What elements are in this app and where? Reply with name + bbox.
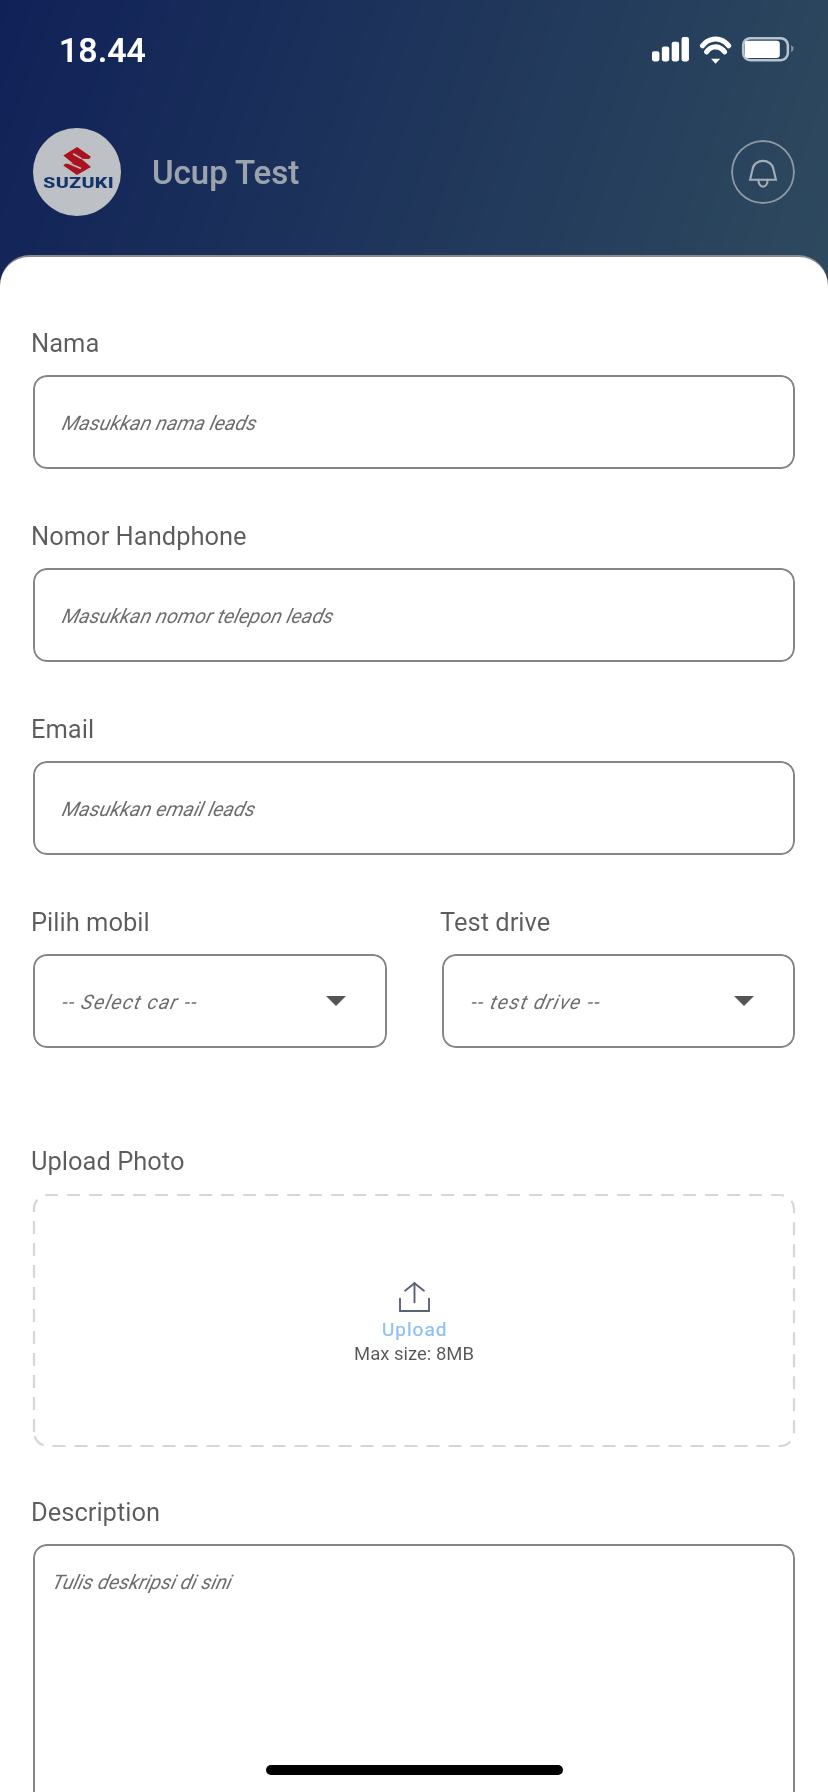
staticText: Upload bbox=[382, 1318, 448, 1340]
button[interactable]: Tulis deskripsi di sini bbox=[33, 1544, 795, 1792]
button[interactable]: Notifications bbox=[731, 140, 795, 204]
button[interactable]: Masukkan nomor telepon leads bbox=[33, 568, 795, 662]
button[interactable]: Masukkan nama leads bbox=[33, 375, 795, 469]
button[interactable]: Upload bbox=[33, 1194, 795, 1447]
staticText: Nama bbox=[31, 328, 100, 358]
button[interactable]: -- test drive -- bbox=[442, 954, 795, 1048]
staticText: Max size: 8MB bbox=[354, 1343, 475, 1365]
staticText: 18.44 bbox=[59, 30, 146, 70]
staticText: Masukkan nomor telepon leads bbox=[61, 604, 333, 627]
staticText: Masukkan nama leads bbox=[61, 411, 256, 434]
button[interactable]: -- Select car -- bbox=[33, 954, 387, 1048]
staticText: SUZUKI bbox=[43, 174, 114, 192]
staticText: Email bbox=[31, 714, 95, 744]
staticText: Ucup Test bbox=[152, 153, 300, 192]
staticText: Masukkan email leads bbox=[61, 797, 254, 820]
staticText: Tulis deskripsi di sini bbox=[51, 1570, 231, 1593]
staticText: Nomor Handphone bbox=[31, 521, 247, 551]
staticText: Pilih mobil bbox=[31, 907, 150, 937]
button[interactable]: Masukkan email leads bbox=[33, 761, 795, 855]
staticText: -- test drive -- bbox=[470, 990, 600, 1013]
staticText: Description bbox=[31, 1497, 161, 1527]
staticText: Test drive bbox=[440, 907, 551, 937]
staticText: -- Select car -- bbox=[61, 990, 197, 1013]
staticText: Upload Photo bbox=[31, 1146, 185, 1176]
